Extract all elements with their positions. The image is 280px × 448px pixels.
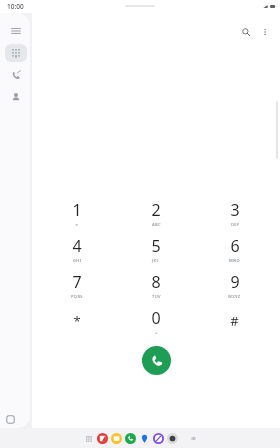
staticText: 8 (151, 271, 161, 293)
button[interactable]: Files (111, 433, 122, 444)
staticText: DEF (231, 222, 240, 227)
staticText: 5 (151, 235, 161, 257)
button[interactable]: Camera (167, 433, 178, 444)
staticText: # (230, 312, 239, 330)
button[interactable]: Chrome (153, 433, 164, 444)
button[interactable]: Call (142, 346, 171, 375)
staticText: 3 (230, 199, 240, 221)
button[interactable]: * (38, 303, 116, 339)
button[interactable]: 0 (116, 303, 195, 339)
button[interactable]: 4 (38, 231, 116, 267)
staticText: 2 (151, 199, 161, 221)
staticText: ∞ (75, 222, 79, 227)
staticText: 1 (72, 199, 82, 221)
button[interactable]: Recent apps (190, 435, 197, 442)
staticText: TUV (152, 294, 161, 299)
button[interactable]: Back (6, 415, 15, 424)
staticText: 7 (72, 271, 82, 293)
button[interactable]: Recents (5, 66, 27, 84)
button[interactable]: Menu (5, 22, 27, 40)
staticText: PQRS (71, 294, 83, 299)
button[interactable]: 6 (195, 231, 274, 267)
staticText: GHI (73, 258, 82, 263)
staticText: 4 (72, 235, 82, 257)
button[interactable]: 9 (195, 267, 274, 303)
button[interactable]: 7 (38, 267, 116, 303)
button[interactable]: Contacts (5, 88, 27, 106)
staticText: ABC (152, 222, 161, 227)
staticText: 0 (151, 307, 161, 329)
staticText: WXYZ (228, 294, 241, 299)
button[interactable]: Search (238, 24, 254, 40)
button[interactable]: Gmail (97, 433, 108, 444)
button[interactable]: 5 (116, 231, 195, 267)
staticText: * (73, 312, 81, 330)
button[interactable]: 2 (116, 195, 195, 231)
staticText: JKL (152, 258, 160, 263)
staticText: 6 (230, 235, 240, 257)
button[interactable]: More options (257, 24, 273, 40)
button[interactable]: 1 (38, 195, 116, 231)
button[interactable]: Maps (139, 433, 150, 444)
staticText: 10:00 (7, 2, 24, 11)
staticText: + (155, 330, 158, 335)
button[interactable]: Keypad (5, 44, 27, 62)
button[interactable]: 8 (116, 267, 195, 303)
staticText: MNO (229, 258, 241, 263)
button[interactable]: Phone (125, 433, 136, 444)
button[interactable]: All apps (84, 434, 94, 444)
button[interactable]: 3 (195, 195, 274, 231)
staticText: 9 (230, 271, 240, 293)
button[interactable]: # (195, 303, 274, 339)
